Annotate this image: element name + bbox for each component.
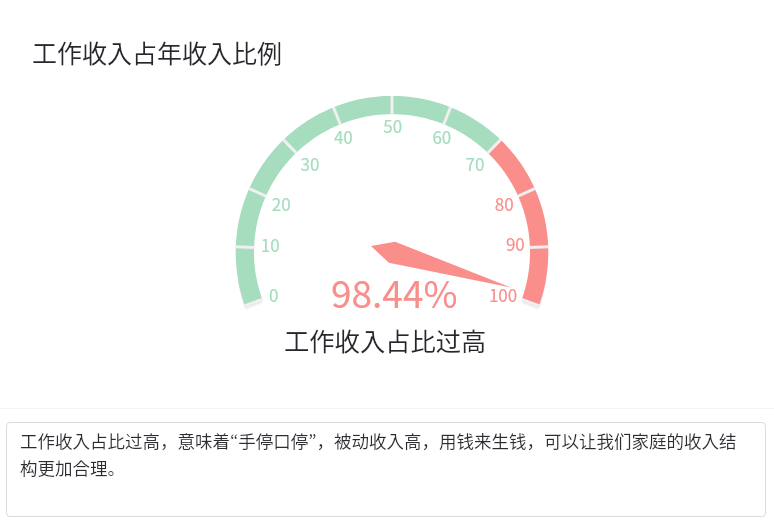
staticText: 工作收入占比过高，意味着“手停口停”，被动收入高，用钱来生钱，可以让我们家庭的收… [20, 428, 754, 480]
staticText: 工作收入占比过高 [284, 322, 487, 359]
button[interactable]: 工作收入占比过高，意味着“手停口停”，被动收入高，用钱来生钱，可以让我们家庭的收… [6, 422, 766, 517]
other: Work income ratio gauge [0, 0, 774, 525]
staticText: 98.44% [331, 265, 458, 319]
staticText: 工作收入占年收入比例 [32, 34, 283, 70]
